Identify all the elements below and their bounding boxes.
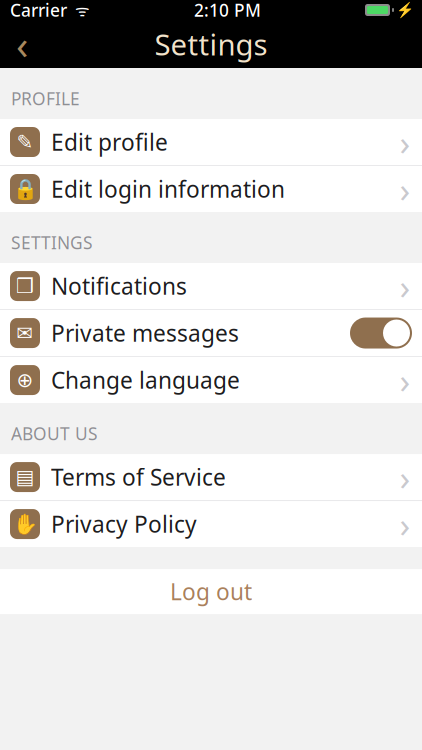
staticText: ›: [399, 454, 410, 500]
button[interactable]: Back: [0, 22, 44, 66]
button[interactable]: ✎: [0, 119, 422, 165]
button[interactable]: ✋: [0, 501, 422, 547]
staticText: PROFILE: [11, 87, 80, 110]
staticText: ›: [399, 357, 410, 403]
staticText: Log out: [170, 576, 252, 607]
staticText: ⊕: [16, 369, 33, 391]
button[interactable]: Private messages: [350, 317, 412, 348]
staticText: ✋: [12, 513, 37, 535]
staticText: ᯤ: [67, 0, 90, 21]
staticText: ›: [399, 119, 410, 165]
button[interactable]: ⊕: [0, 357, 422, 403]
staticText: Carrier: [10, 0, 67, 21]
staticText: ▤: [15, 466, 34, 488]
staticText: ✉: [16, 322, 33, 344]
staticText: ❒: [16, 275, 34, 297]
staticText: ✎: [16, 131, 33, 153]
staticText: ABOUT US: [11, 422, 98, 445]
staticText: Settings: [154, 24, 267, 63]
staticText: ›: [399, 166, 410, 212]
staticText: Notifications: [51, 271, 187, 301]
staticText: ‹: [16, 17, 28, 70]
staticText: Private messages: [51, 318, 239, 348]
staticText: Terms of Service: [51, 462, 226, 492]
staticText: ›: [399, 263, 410, 309]
staticText: Privacy Policy: [51, 509, 197, 539]
staticText: Edit login information: [51, 174, 285, 204]
staticText: Change language: [51, 365, 240, 395]
button[interactable]: ▤: [0, 454, 422, 500]
staticText: ⚡: [396, 2, 414, 18]
button[interactable]: ❒: [0, 263, 422, 309]
staticText: 🔒: [12, 178, 37, 200]
staticText: Edit profile: [51, 127, 168, 157]
button[interactable]: Log out: [0, 569, 422, 614]
staticText: ›: [399, 501, 410, 547]
staticText: 2:10 PM: [194, 0, 261, 21]
button[interactable]: 🔒: [0, 166, 422, 212]
staticText: SETTINGS: [11, 231, 93, 254]
